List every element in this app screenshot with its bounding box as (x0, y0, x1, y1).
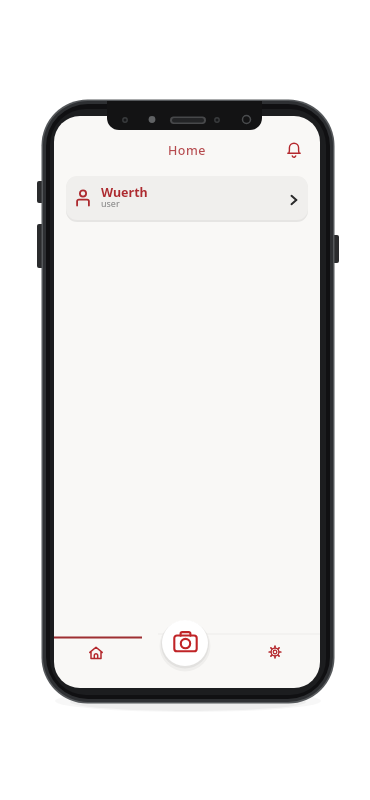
staticText: Home (168, 142, 207, 159)
button[interactable] (279, 134, 309, 164)
button[interactable] (255, 632, 295, 672)
button[interactable]: Wuerth (66, 176, 308, 220)
staticText: Wuerth (101, 184, 148, 201)
staticText: user (101, 197, 120, 209)
button[interactable] (76, 633, 116, 673)
button[interactable] (162, 620, 208, 666)
